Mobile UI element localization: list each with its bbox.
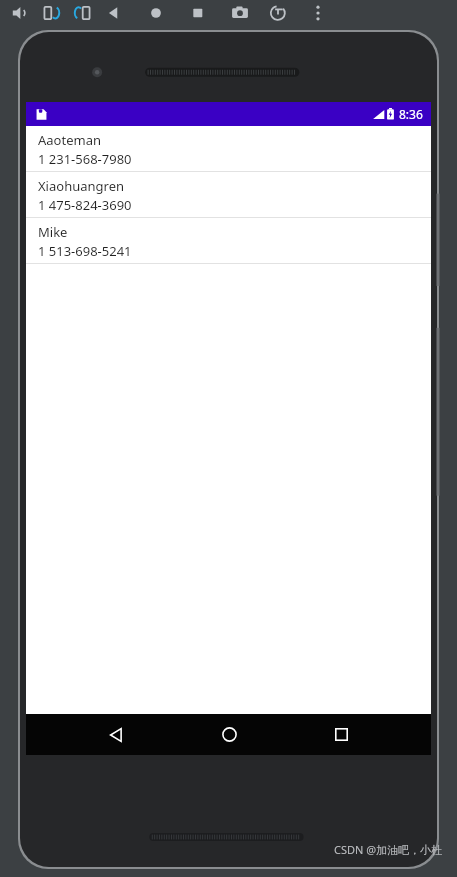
staticText: Xiaohuangren bbox=[38, 177, 124, 195]
button[interactable]: Mike bbox=[26, 218, 431, 263]
staticText: Aaoteman bbox=[38, 131, 101, 149]
button[interactable]: Home bbox=[206, 714, 252, 755]
staticText: 1 513-698-5241 bbox=[38, 242, 132, 260]
button[interactable]: Back bbox=[104, 3, 124, 23]
button[interactable]: Rotate right bbox=[72, 3, 92, 23]
staticText: 1 231-568-7980 bbox=[38, 150, 132, 168]
button[interactable]: Volume bbox=[10, 3, 30, 23]
button[interactable]: More options bbox=[308, 3, 328, 23]
button[interactable]: Overview bbox=[188, 3, 208, 23]
staticText: 1 475-824-3690 bbox=[38, 196, 132, 214]
staticText: Mike bbox=[38, 223, 68, 241]
button[interactable]: Overview bbox=[318, 714, 364, 755]
button[interactable]: Screenshot bbox=[230, 3, 250, 23]
button[interactable]: Restore bbox=[268, 3, 288, 23]
staticText: 8:36 bbox=[399, 106, 423, 122]
button[interactable]: Rotate left bbox=[42, 3, 62, 23]
button[interactable]: Home bbox=[146, 3, 166, 23]
button[interactable]: Aaoteman bbox=[26, 126, 431, 171]
staticText: CSDN @加油吧，小杜 bbox=[334, 842, 443, 857]
button[interactable]: Back bbox=[93, 714, 139, 755]
button[interactable]: Xiaohuangren bbox=[26, 172, 431, 217]
